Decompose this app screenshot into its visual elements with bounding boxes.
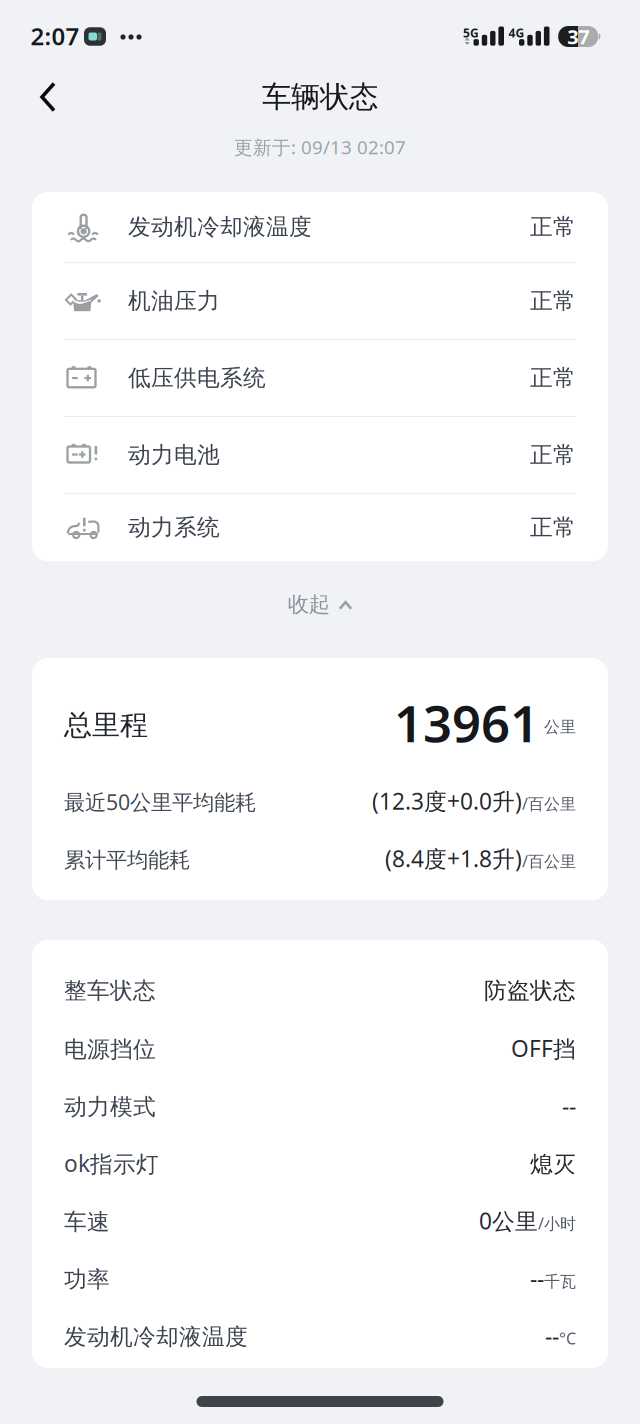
- button[interactable]: 发动机冷却液温度: [32, 192, 608, 262]
- button[interactable]: 低压供电系统: [32, 340, 608, 416]
- staticText: 5G: [463, 25, 479, 41]
- staticText: 发动机冷却液温度: [64, 1323, 248, 1351]
- staticText: 收起: [288, 591, 330, 618]
- staticText: 公里: [544, 717, 576, 737]
- staticText: 正常: [530, 514, 576, 541]
- staticText: 整车状态: [64, 977, 156, 1005]
- staticText: 车速: [64, 1208, 110, 1236]
- staticText: 发动机冷却液温度: [128, 213, 312, 241]
- staticText: --: [530, 1263, 544, 1293]
- staticText: OFF挡: [511, 1033, 576, 1063]
- staticText: 累计平均能耗: [64, 847, 190, 873]
- staticText: 机油压力: [128, 287, 220, 315]
- button[interactable]: 动力电池: [32, 417, 608, 493]
- staticText: 车辆状态: [262, 79, 378, 115]
- staticText: 千瓦: [544, 1272, 576, 1291]
- staticText: 正常: [530, 287, 576, 315]
- staticText: 正常: [530, 213, 576, 241]
- button[interactable]: 收起: [288, 589, 352, 619]
- staticText: 2:07: [30, 20, 79, 52]
- staticText: 熄灭: [530, 1150, 576, 1178]
- staticText: (8.4度+1.8升): [385, 843, 522, 874]
- staticText: °C: [559, 1328, 576, 1349]
- staticText: (12.3度+0.0升): [372, 786, 522, 816]
- staticText: 正常: [530, 441, 576, 469]
- staticText: 动力模式: [64, 1093, 156, 1121]
- staticText: 低压供电系统: [128, 364, 266, 392]
- staticText: ok指示灯: [64, 1148, 159, 1178]
- staticText: 13961: [394, 689, 539, 756]
- staticText: 更新于: 09/13 02:07: [234, 135, 406, 159]
- staticText: /百公里: [522, 850, 576, 872]
- staticText: 动力系统: [128, 514, 220, 541]
- staticText: 防盗状态: [484, 977, 576, 1005]
- staticText: 37: [567, 23, 589, 50]
- button[interactable]: Back: [20, 69, 76, 125]
- staticText: /小时: [538, 1213, 576, 1234]
- button[interactable]: 机油压力: [32, 263, 608, 339]
- button[interactable]: 动力系统: [32, 494, 608, 561]
- staticText: 最近50公里平均能耗: [64, 788, 256, 816]
- staticText: --: [562, 1091, 576, 1121]
- staticText: 功率: [64, 1265, 110, 1293]
- staticText: 电源挡位: [64, 1035, 156, 1063]
- staticText: 0公里: [479, 1206, 538, 1236]
- staticText: 总里程: [64, 708, 148, 742]
- staticText: 4G: [508, 25, 524, 41]
- staticText: --: [545, 1321, 559, 1351]
- staticText: /百公里: [522, 793, 576, 814]
- staticText: 正常: [530, 364, 576, 392]
- staticText: 动力电池: [128, 441, 220, 469]
